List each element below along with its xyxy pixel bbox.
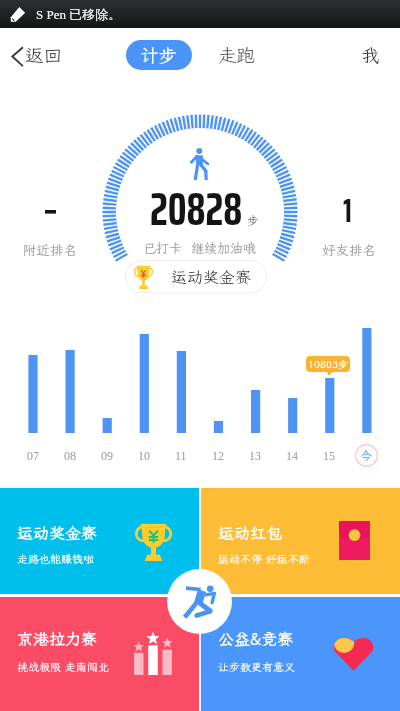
staticText: S Pen 已移除。 <box>36 6 122 22</box>
button[interactable]: 京港拉力赛 <box>0 597 199 711</box>
staticText: 13 <box>249 449 261 462</box>
staticText: 京港拉力赛 <box>17 628 98 649</box>
staticText: 09 <box>101 449 113 462</box>
staticText: 运动奖金赛 <box>171 266 252 287</box>
button[interactable]: 开始跑步 <box>167 569 232 634</box>
staticText: 走路也能赚钱啦 <box>17 552 94 566</box>
button[interactable]: 我 <box>352 40 388 70</box>
staticText: 我 <box>361 43 380 67</box>
staticText: 挑战极限 走南闯北 <box>17 660 109 674</box>
staticText: 返回 <box>25 43 63 67</box>
staticText: 运动不停 好运不断 <box>218 552 310 566</box>
staticText: 让步数更有意义 <box>218 660 295 674</box>
staticText: 公益&竞赛 <box>218 628 294 649</box>
button[interactable]: 运动奖金赛 <box>125 260 267 293</box>
staticText: 07 <box>27 449 39 462</box>
staticText: 20828 <box>150 172 243 246</box>
button[interactable]: 返回 <box>4 38 66 72</box>
staticText: 好友排名 <box>322 241 376 259</box>
staticText: 14 <box>286 449 298 462</box>
staticText: 附近排名 <box>23 241 77 259</box>
staticText: 今 <box>360 448 373 464</box>
staticText: 11 <box>175 449 187 462</box>
staticText: 走跑 <box>218 43 256 67</box>
button[interactable]: 运动奖金赛 <box>0 488 199 594</box>
staticText: 计步 <box>140 43 178 67</box>
button[interactable]: 运动红包 <box>201 488 400 594</box>
staticText: 10803步 <box>308 358 348 371</box>
staticText: 12 <box>212 449 224 462</box>
staticText: 10 <box>138 449 150 462</box>
staticText: 运动红包 <box>218 522 283 543</box>
staticText: 步 <box>247 213 260 229</box>
button[interactable]: 走跑 <box>212 40 262 70</box>
button[interactable]: 计步 <box>126 40 192 70</box>
button[interactable]: 公益&竞赛 <box>201 597 400 711</box>
staticText: 1 <box>343 185 352 237</box>
staticText: 08 <box>64 449 76 462</box>
staticText: 已打卡 继续加油哦 <box>143 240 257 257</box>
staticText: 运动奖金赛 <box>17 522 98 543</box>
staticText: 15 <box>323 449 335 462</box>
button[interactable]: 今 <box>355 444 378 467</box>
